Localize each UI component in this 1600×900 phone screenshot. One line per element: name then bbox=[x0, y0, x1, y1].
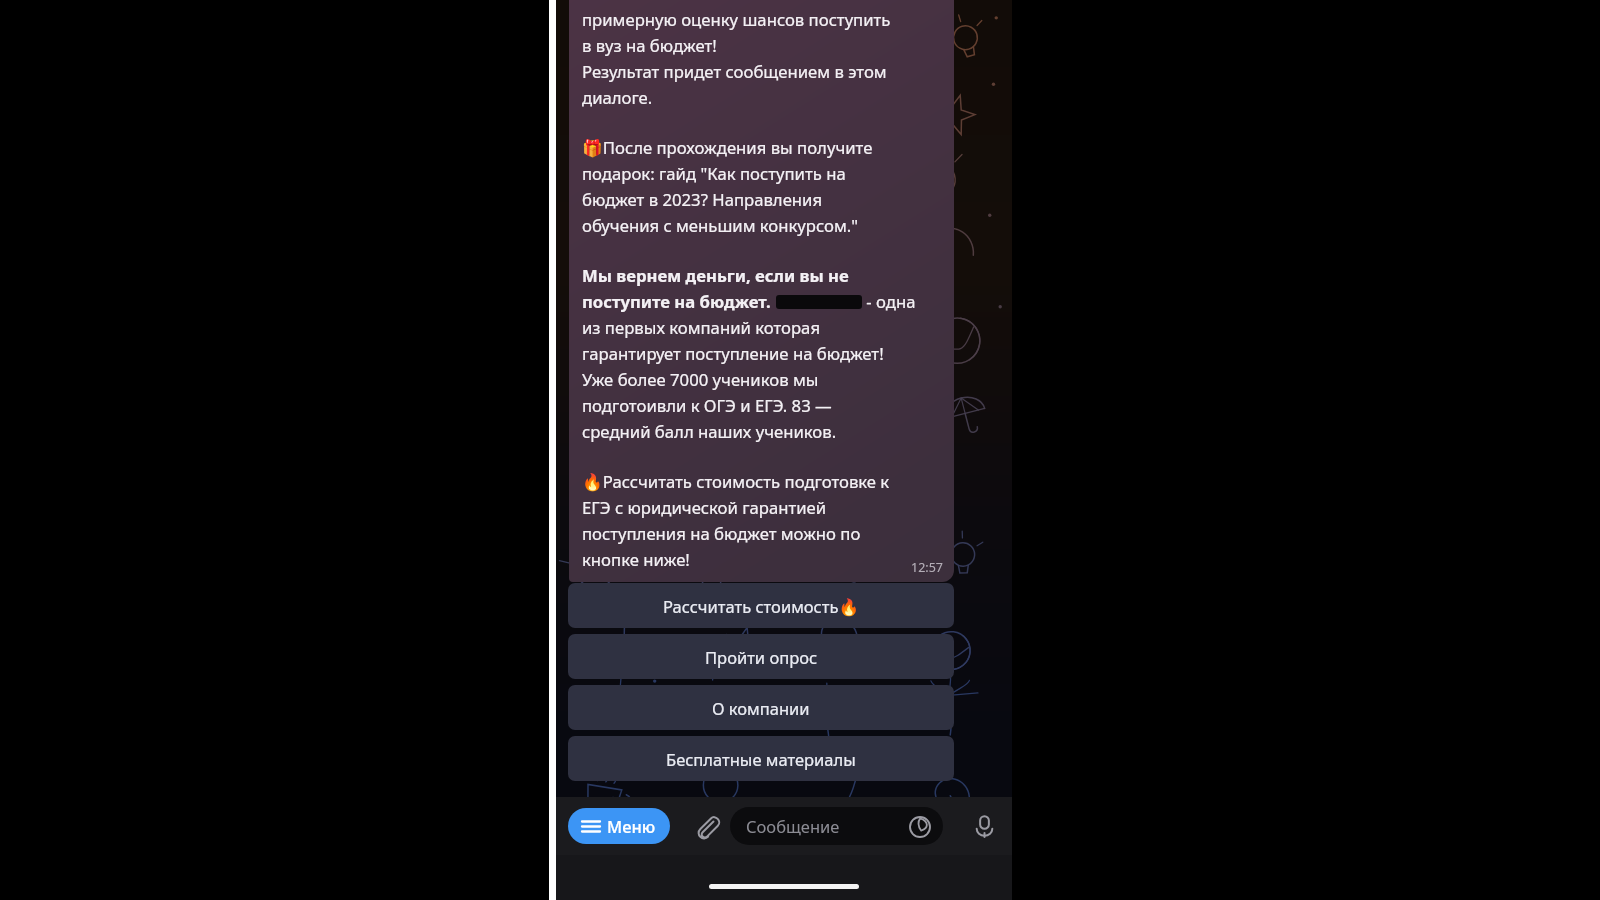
staticText: из первых компаний которая bbox=[582, 316, 821, 339]
staticText: обучения с меньшим конкурсом." bbox=[582, 214, 859, 237]
button[interactable]: О компании bbox=[568, 685, 954, 730]
button[interactable]: Record voice message bbox=[963, 805, 1005, 847]
button[interactable]: Сообщение bbox=[730, 807, 943, 845]
staticText: подарок: гайд "Как поступить на bbox=[582, 162, 846, 185]
staticText: подготоивли к ОГЭ и ЕГЭ. 83 — bbox=[582, 394, 832, 417]
staticText: - одна bbox=[862, 290, 916, 313]
staticText: поступления на бюджет можно по bbox=[582, 522, 861, 545]
staticText: поступите на бюджет. bbox=[582, 290, 771, 313]
staticText: Рассчитать стоимость🔥 bbox=[663, 595, 859, 617]
button[interactable]: Stickers bbox=[906, 813, 933, 840]
staticText: Бесплатные материалы bbox=[666, 748, 856, 770]
staticText: Меню bbox=[607, 815, 656, 837]
button[interactable]: Меню bbox=[568, 808, 670, 844]
staticText: ЕГЭ с юридической гарантией bbox=[582, 496, 827, 519]
staticText: Результат придет сообщением в этом bbox=[582, 60, 887, 83]
staticText: О компании bbox=[712, 697, 810, 719]
staticText: Уже более 7000 учеников мы bbox=[582, 368, 819, 391]
button[interactable]: Пройти опрос bbox=[568, 634, 954, 679]
staticText: в вуз на бюджет! bbox=[582, 34, 717, 57]
staticText: кнопке ниже! bbox=[582, 548, 690, 571]
staticText: 🎁После прохождения вы получите bbox=[582, 136, 873, 159]
button[interactable]: Рассчитать стоимость🔥 bbox=[568, 583, 954, 628]
staticText: Мы вернем деньги, если вы не bbox=[582, 264, 849, 287]
staticText: 12:57 bbox=[911, 559, 943, 576]
staticText: средний балл наших учеников. bbox=[582, 420, 837, 443]
staticText: бюджет в 2023? Направления bbox=[582, 188, 823, 211]
button[interactable]: Attach file bbox=[686, 805, 728, 847]
staticText: Сообщение bbox=[746, 815, 840, 837]
staticText: гарантирует поступление на бюджет! bbox=[582, 342, 884, 365]
button[interactable]: Бесплатные материалы bbox=[568, 736, 954, 781]
staticText: примерную оценку шансов поступить bbox=[582, 8, 891, 31]
staticText: диалоге. bbox=[582, 86, 653, 109]
staticText: Пройти опрос bbox=[705, 646, 818, 668]
staticText: 🔥Рассчитать стоимость подготовке к bbox=[582, 470, 890, 493]
